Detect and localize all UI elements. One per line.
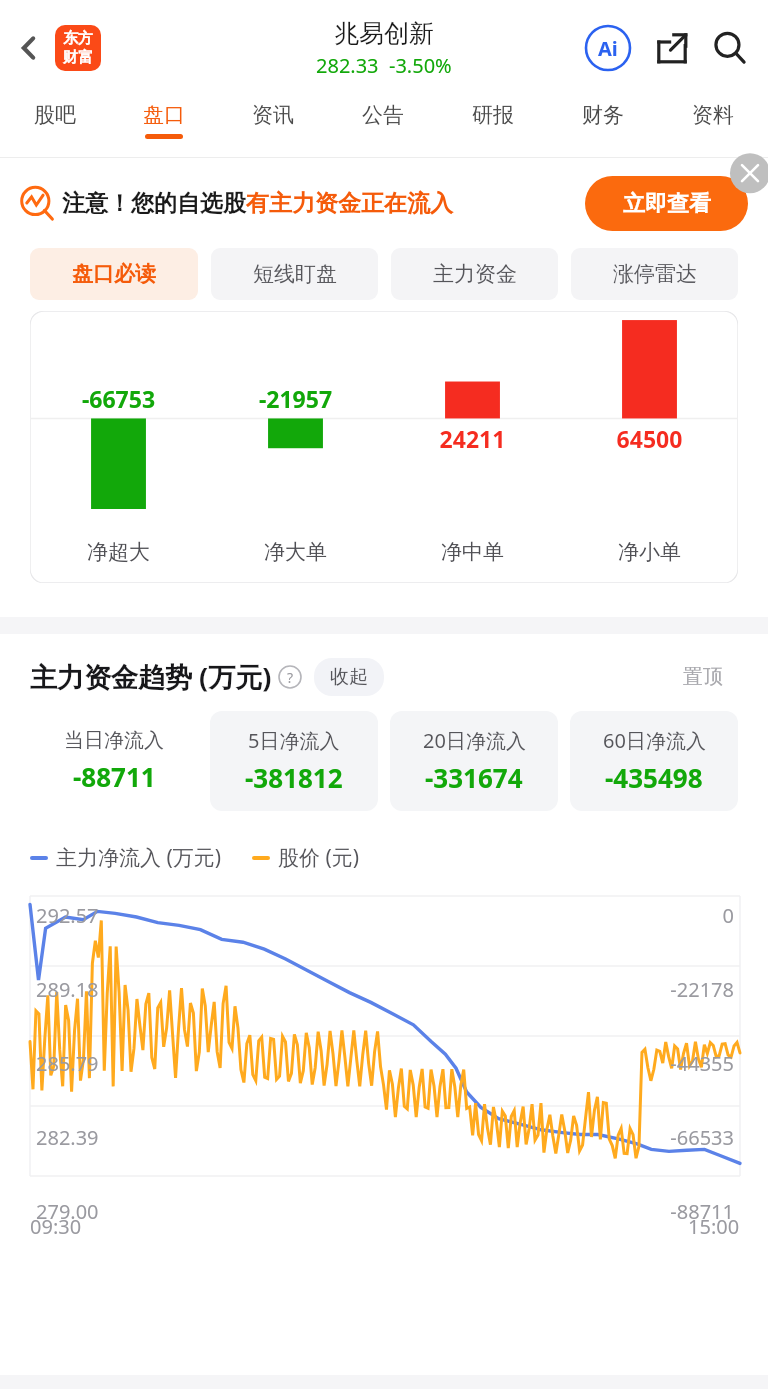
staticText: 股价 (元) bbox=[278, 843, 360, 872]
staticText: 292.57 bbox=[36, 902, 99, 929]
staticText: 财富 bbox=[63, 48, 93, 67]
staticText: -435498 bbox=[605, 760, 703, 795]
button[interactable]: 资讯 bbox=[218, 95, 328, 157]
button[interactable]: 资料 bbox=[658, 95, 768, 157]
staticText: 净大单 bbox=[207, 539, 384, 565]
staticText: 282.33 -3.50% bbox=[316, 52, 452, 79]
button[interactable]: 立即查看 bbox=[585, 176, 748, 231]
staticText: 285.79 bbox=[36, 1050, 99, 1077]
button[interactable]: 收起 bbox=[314, 658, 384, 696]
staticText: ? bbox=[287, 668, 294, 687]
staticText: 兆易创新 bbox=[334, 18, 434, 49]
staticText: 涨停雷达 bbox=[613, 261, 697, 287]
button[interactable]: 股吧 bbox=[0, 95, 109, 157]
staticText: 09:30 bbox=[30, 1213, 82, 1240]
staticText: 立即查看 bbox=[623, 190, 711, 218]
staticText: 资讯 bbox=[252, 102, 294, 128]
button[interactable]: 盘口 bbox=[109, 95, 218, 157]
staticText: -44355 bbox=[0, 1050, 734, 1077]
staticText: 60日净流入 bbox=[603, 727, 706, 754]
button[interactable]: 盘口必读 bbox=[30, 248, 198, 300]
button[interactable]: 主力资金 bbox=[391, 248, 558, 300]
staticText: 0 bbox=[0, 902, 734, 929]
button[interactable]: 涨停雷达 bbox=[571, 248, 738, 300]
staticText: -88711 bbox=[73, 759, 156, 794]
staticText: 注意！您的自选股 bbox=[62, 189, 246, 218]
staticText: 公告 bbox=[362, 102, 404, 128]
staticText: -331674 bbox=[425, 760, 523, 795]
staticText: 净中单 bbox=[384, 539, 561, 565]
staticText: 289.18 bbox=[36, 976, 99, 1003]
button[interactable]: 当日净流入 bbox=[30, 711, 198, 811]
button[interactable]: 公告 bbox=[328, 95, 438, 157]
button[interactable]: -66753 bbox=[30, 311, 738, 583]
staticText: 5日净流入 bbox=[248, 727, 340, 754]
staticText: 股吧 bbox=[34, 102, 76, 128]
button[interactable]: 置顶 bbox=[666, 656, 740, 697]
staticText: 20日净流入 bbox=[423, 727, 526, 754]
staticText: 282.39 bbox=[36, 1124, 99, 1151]
button[interactable]: East Money bbox=[55, 25, 101, 71]
staticText: 资料 bbox=[692, 102, 734, 128]
staticText: 主力净流入 (万元) bbox=[56, 843, 222, 872]
staticText: 15:00 bbox=[688, 1213, 740, 1240]
staticText: -21957 bbox=[207, 383, 384, 414]
staticText: 有主力资金正在流入 bbox=[246, 189, 453, 218]
button[interactable]: AI bbox=[582, 22, 634, 74]
button[interactable]: 5日净流入 bbox=[210, 711, 378, 811]
button[interactable]: Share bbox=[648, 24, 696, 72]
staticText: 净超大 bbox=[30, 539, 207, 565]
button[interactable]: Back bbox=[6, 25, 52, 71]
staticText: -66533 bbox=[0, 1124, 734, 1151]
staticText: 置顶 bbox=[683, 664, 723, 689]
button[interactable]: 短线盯盘 bbox=[211, 248, 378, 300]
staticText: 收起 bbox=[330, 665, 368, 689]
staticText: 财务 bbox=[582, 102, 624, 128]
staticText: 盘口 bbox=[143, 102, 185, 128]
staticText: 盘口必读 bbox=[72, 261, 156, 287]
staticText: -381812 bbox=[245, 760, 343, 795]
button[interactable]: Help bbox=[278, 665, 302, 689]
staticText: 短线盯盘 bbox=[253, 261, 337, 287]
staticText: 东方 bbox=[63, 29, 93, 48]
staticText: 主力资金 bbox=[433, 261, 517, 287]
button[interactable]: 60日净流入 bbox=[570, 711, 738, 811]
staticText: 主力资金趋势 (万元) bbox=[30, 658, 272, 695]
button[interactable]: Close bbox=[728, 158, 768, 198]
staticText: 研报 bbox=[472, 102, 514, 128]
staticText: -22178 bbox=[0, 976, 734, 1003]
button[interactable]: 20日净流入 bbox=[390, 711, 558, 811]
button[interactable]: 研报 bbox=[438, 95, 548, 157]
staticText: 64500 bbox=[561, 423, 738, 454]
staticText: -88711 bbox=[0, 1198, 734, 1225]
button[interactable]: 财务 bbox=[548, 95, 658, 157]
staticText: 279.00 bbox=[36, 1198, 99, 1225]
staticText: 24211 bbox=[384, 423, 561, 454]
staticText: 当日净流入 bbox=[64, 728, 164, 753]
button[interactable]: Search bbox=[706, 24, 754, 72]
staticText: -66753 bbox=[30, 383, 207, 414]
staticText: 净小单 bbox=[561, 539, 738, 565]
staticText: Ai bbox=[598, 35, 618, 62]
